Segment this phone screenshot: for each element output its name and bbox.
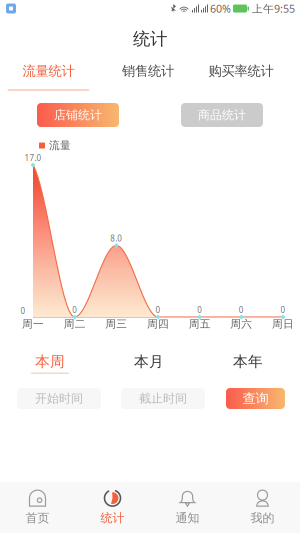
staticText: 购买率统计 xyxy=(208,63,273,79)
button[interactable]: 购买率统计 xyxy=(191,64,291,91)
button[interactable]: 本月 xyxy=(109,354,189,374)
staticText: 0 xyxy=(20,306,25,316)
staticText: 店铺统计 xyxy=(54,108,102,122)
staticText: 0 xyxy=(280,305,285,315)
button[interactable]: 开始时间 xyxy=(17,388,101,409)
staticText: 统计 xyxy=(100,511,124,525)
staticText: 商品统计 xyxy=(198,108,246,122)
button[interactable]: 统计 xyxy=(75,482,150,533)
staticText: 截止时间 xyxy=(139,391,187,406)
button[interactable]: 商品统计 xyxy=(181,103,263,127)
button[interactable]: 流量统计 xyxy=(0,64,98,91)
staticText: 0 xyxy=(72,305,77,315)
staticText: 周五 xyxy=(189,317,211,330)
button[interactable]: 销售统计 xyxy=(98,64,198,91)
staticText: 周六 xyxy=(230,317,252,330)
staticText: 通知 xyxy=(175,511,199,525)
staticText: 上午9:55 xyxy=(252,1,295,16)
staticText: 0 xyxy=(239,305,244,315)
staticText: 周四 xyxy=(147,317,169,330)
staticText: 查询 xyxy=(242,390,268,407)
staticText: 周二 xyxy=(64,317,86,330)
staticText: 销售统计 xyxy=(122,63,174,79)
staticText: 我的 xyxy=(250,511,274,525)
staticText: 周日 xyxy=(272,317,294,330)
button[interactable]: 查询 xyxy=(226,388,285,409)
button[interactable]: 本周 xyxy=(10,354,90,374)
staticText: 周一 xyxy=(22,317,44,330)
staticText: 流量 xyxy=(49,139,71,152)
staticText: 周三 xyxy=(105,317,127,330)
staticText: 8.0 xyxy=(110,233,122,244)
staticText: 本月 xyxy=(134,352,164,370)
staticText: 首页 xyxy=(25,511,49,525)
staticText: 17.0 xyxy=(24,153,41,163)
button[interactable]: 截止时间 xyxy=(121,388,205,409)
button[interactable]: 本年 xyxy=(208,354,288,374)
staticText: 开始时间 xyxy=(35,391,83,406)
button[interactable]: 我的 xyxy=(225,482,300,533)
staticText: 60% xyxy=(210,1,231,16)
button[interactable]: 通知 xyxy=(150,482,225,533)
staticText: 本周 xyxy=(35,352,65,370)
staticText: 0 xyxy=(155,305,160,315)
button[interactable]: 首页 xyxy=(0,482,75,533)
staticText: 0 xyxy=(197,305,202,315)
button[interactable]: 店铺统计 xyxy=(37,103,119,127)
staticText: 统计 xyxy=(133,28,167,50)
staticText: 流量统计 xyxy=(22,63,74,79)
staticText: 本年 xyxy=(233,352,263,370)
